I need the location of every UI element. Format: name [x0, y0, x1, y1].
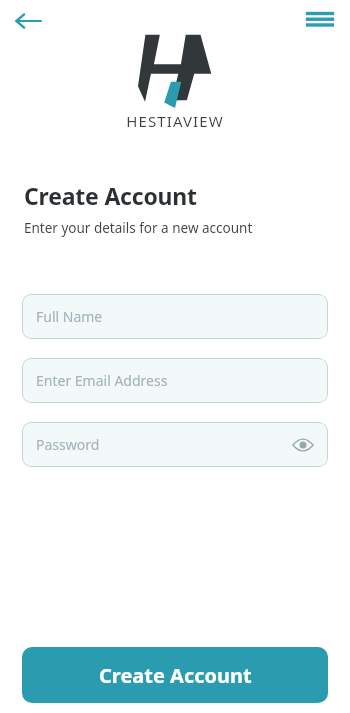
staticText: Create Account	[99, 662, 252, 689]
staticText: Enter your details for a new account	[24, 219, 253, 237]
button[interactable]: Full Name	[22, 294, 328, 339]
staticText: Enter Email Address	[36, 371, 168, 390]
button[interactable]: Create Account	[22, 647, 328, 703]
staticText: Create Account	[24, 180, 197, 211]
button[interactable]: Enter Email Address	[22, 358, 328, 403]
staticText: Password	[36, 435, 100, 454]
button[interactable]: Back	[10, 6, 46, 36]
button[interactable]: Menu	[305, 7, 335, 31]
staticText: Full Name	[36, 307, 103, 326]
staticText: HESTIAVIEW	[0, 111, 350, 131]
button[interactable]: Show password	[292, 434, 314, 456]
button[interactable]: Password	[22, 422, 328, 467]
